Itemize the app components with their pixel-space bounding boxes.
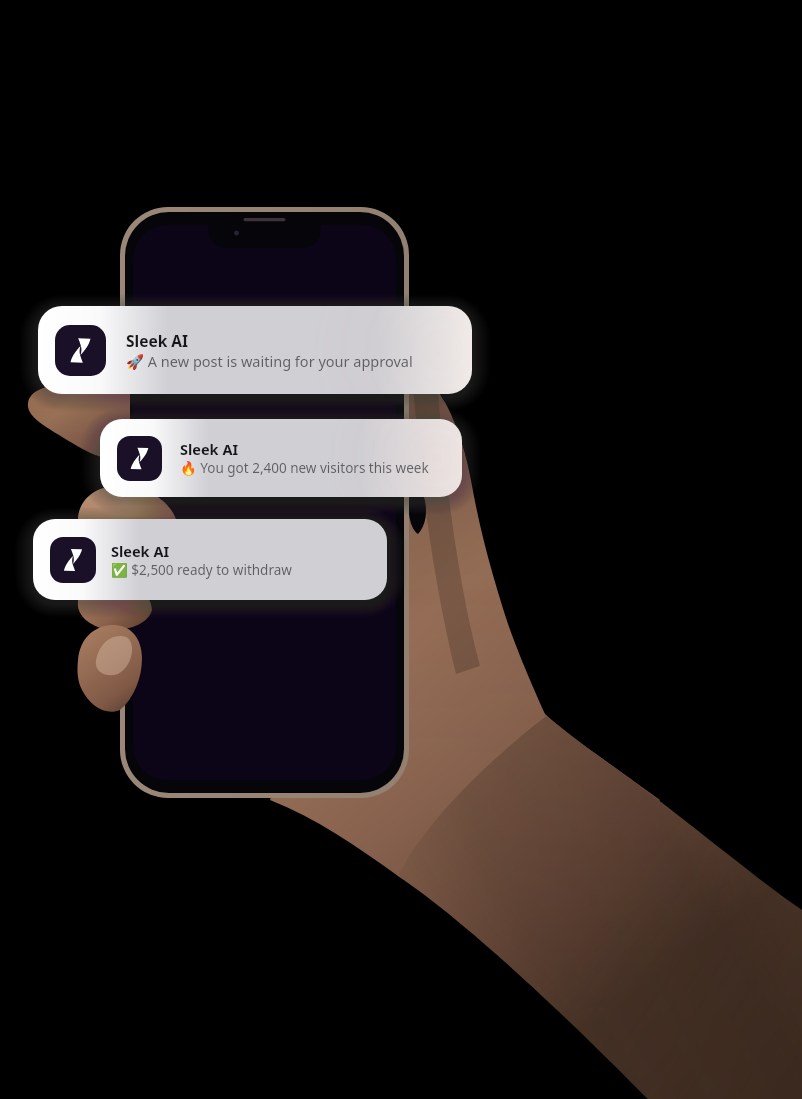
staticText: 🚀 A new post is waiting for your approva… (126, 351, 413, 371)
button[interactable]: Sleek AI (33, 519, 387, 600)
button[interactable]: Sleek AI (100, 419, 462, 497)
button[interactable]: Sleek AI (38, 306, 472, 394)
staticText: Sleek AI (180, 439, 239, 459)
staticText: Sleek AI (126, 330, 189, 351)
staticText: 🔥 You got 2,400 new visitors this week (180, 459, 429, 477)
staticText: ✅ $2,500 ready to withdraw (111, 561, 292, 579)
staticText: Sleek AI (111, 541, 170, 561)
